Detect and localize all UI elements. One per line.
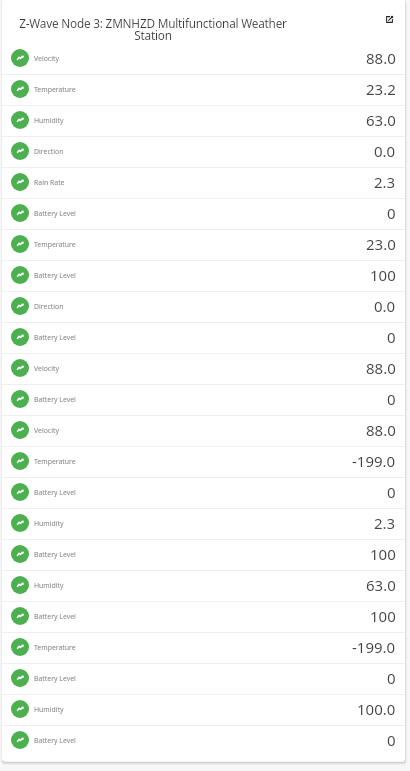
staticText: Temperature [34, 240, 76, 249]
button[interactable]: Velocity [2, 415, 405, 445]
staticText: Velocity [34, 54, 59, 63]
button[interactable]: Humidity [2, 570, 405, 600]
staticText: 2.3 [374, 513, 396, 533]
staticText: 2.3 [374, 172, 396, 192]
staticText: 23.2 [366, 79, 396, 99]
button[interactable]: Temperature [2, 446, 405, 476]
staticText: Battery Level [34, 736, 76, 745]
button[interactable]: Battery Level [2, 477, 405, 507]
staticText: 100.0 [357, 699, 396, 719]
staticText: -199.0 [352, 451, 396, 471]
button[interactable]: Open in new window [379, 9, 399, 29]
staticText: Rain Rate [34, 178, 65, 187]
staticText: Battery Level [34, 488, 76, 497]
button[interactable]: Battery Level [2, 539, 405, 569]
button[interactable]: Direction [2, 291, 405, 321]
button[interactable]: Battery Level [2, 322, 405, 352]
staticText: 23.0 [366, 234, 396, 254]
staticText: -199.0 [352, 637, 396, 657]
button[interactable]: Velocity [2, 353, 405, 383]
staticText: 100 [370, 265, 396, 285]
staticText: Direction [34, 147, 64, 156]
staticText: 88.0 [366, 420, 396, 440]
staticText: 0 [387, 203, 396, 223]
staticText: 0 [387, 730, 396, 750]
button[interactable]: Temperature [2, 74, 405, 104]
staticText: 100 [370, 544, 396, 564]
button[interactable]: Direction [2, 136, 405, 166]
staticText: 88.0 [366, 48, 396, 68]
staticText: Velocity [34, 364, 59, 373]
button[interactable]: Battery Level [2, 663, 405, 693]
button[interactable]: Battery Level [2, 384, 405, 414]
staticText: 0.0 [374, 296, 396, 316]
staticText: Battery Level [34, 550, 76, 559]
staticText: 0.0 [374, 141, 396, 161]
staticText: 88.0 [366, 358, 396, 378]
button[interactable]: Battery Level [2, 601, 405, 631]
staticText: 0 [387, 482, 396, 502]
button[interactable]: Humidity [2, 105, 405, 135]
staticText: Velocity [34, 426, 59, 435]
staticText: Z-Wave Node 3: ZMNHZD Multifunctional We… [13, 15, 293, 44]
button[interactable]: Temperature [2, 229, 405, 259]
staticText: Battery Level [34, 612, 76, 621]
button[interactable]: Battery Level [2, 198, 405, 228]
staticText: 0 [387, 668, 396, 688]
button[interactable]: Humidity [2, 694, 405, 724]
staticText: Temperature [34, 643, 76, 652]
staticText: Battery Level [34, 674, 76, 683]
staticText: Direction [34, 302, 64, 311]
staticText: Temperature [34, 85, 76, 94]
staticText: Humidity [34, 581, 64, 590]
staticText: Battery Level [34, 271, 76, 280]
staticText: Humidity [34, 116, 64, 125]
button[interactable]: Humidity [2, 508, 405, 538]
button[interactable]: Rain Rate [2, 167, 405, 197]
button[interactable]: Temperature [2, 632, 405, 662]
staticText: 0 [387, 327, 396, 347]
staticText: Battery Level [34, 395, 76, 404]
staticText: Battery Level [34, 209, 76, 218]
button[interactable]: Battery Level [2, 260, 405, 290]
staticText: 63.0 [366, 110, 396, 130]
button[interactable]: Battery Level [2, 725, 405, 755]
staticText: Battery Level [34, 333, 76, 342]
staticText: 100 [370, 606, 396, 626]
staticText: Humidity [34, 519, 64, 528]
staticText: Humidity [34, 705, 64, 714]
staticText: Temperature [34, 457, 76, 466]
staticText: 0 [387, 389, 396, 409]
button[interactable]: Velocity [2, 43, 405, 73]
staticText: 63.0 [366, 575, 396, 595]
